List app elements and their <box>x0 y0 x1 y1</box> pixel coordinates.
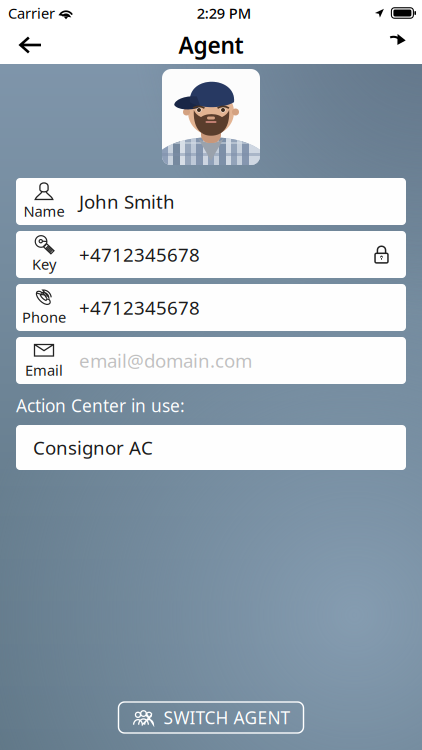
button[interactable]: SWITCH AGENT <box>118 702 303 733</box>
staticText: Phone <box>22 307 66 327</box>
staticText: Agent <box>178 30 243 60</box>
staticText: +4712345678 <box>79 242 200 267</box>
staticText: Name <box>23 201 64 221</box>
staticText: John Smith <box>79 189 175 214</box>
staticText: email@domain.com <box>79 348 252 373</box>
staticText: Consignor AC <box>33 435 153 460</box>
button[interactable]: Refresh <box>370 26 417 63</box>
staticText: Carrier <box>8 3 55 23</box>
staticText: SWITCH AGENT <box>163 706 290 729</box>
staticText: 2:29 PM <box>197 3 251 23</box>
button[interactable]: Back <box>5 26 56 63</box>
staticText: +4712345678 <box>79 295 200 320</box>
staticText: Key <box>32 254 56 274</box>
staticText: Email <box>25 360 63 380</box>
staticText: Action Center in use: <box>16 394 185 417</box>
